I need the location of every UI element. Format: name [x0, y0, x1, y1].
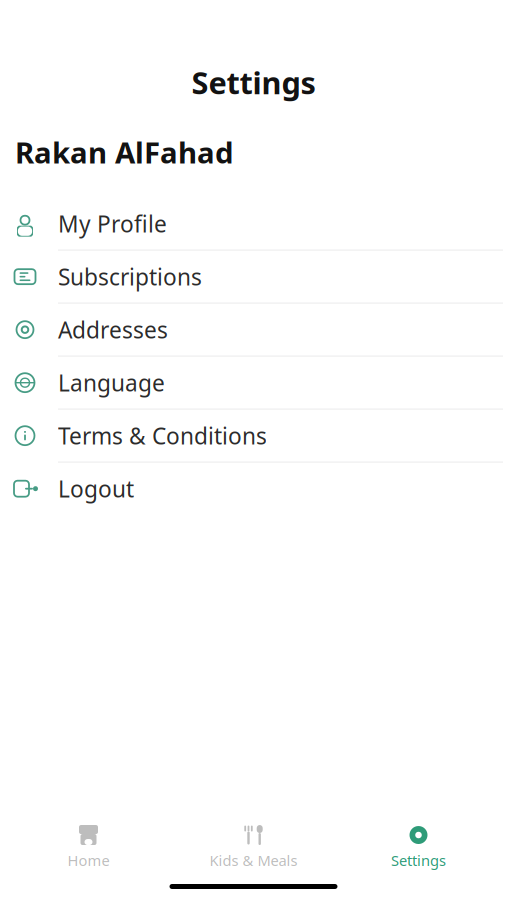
button[interactable]: Subscriptions — [0, 251, 507, 304]
staticText: Language — [58, 368, 165, 398]
button[interactable]: Home — [6, 818, 171, 876]
button[interactable]: My Profile — [0, 198, 507, 251]
staticText: Subscriptions — [58, 262, 202, 292]
staticText: Logout — [58, 474, 134, 504]
staticText: Settings — [191, 62, 315, 103]
button[interactable]: Settings — [336, 818, 501, 876]
staticText: Rakan AlFahad — [15, 133, 234, 172]
button[interactable]: Logout — [0, 463, 507, 516]
staticText: My Profile — [58, 209, 167, 239]
button[interactable]: Terms & Conditions — [0, 410, 507, 463]
staticText: Terms & Conditions — [58, 421, 267, 451]
staticText: Settings — [391, 850, 446, 870]
button[interactable]: Kids & Meals — [171, 818, 336, 876]
staticText: Addresses — [58, 315, 168, 345]
staticText: Home — [67, 850, 109, 870]
button[interactable]: Addresses — [0, 304, 507, 357]
button[interactable]: Language — [0, 357, 507, 410]
staticText: Kids & Meals — [209, 850, 297, 870]
